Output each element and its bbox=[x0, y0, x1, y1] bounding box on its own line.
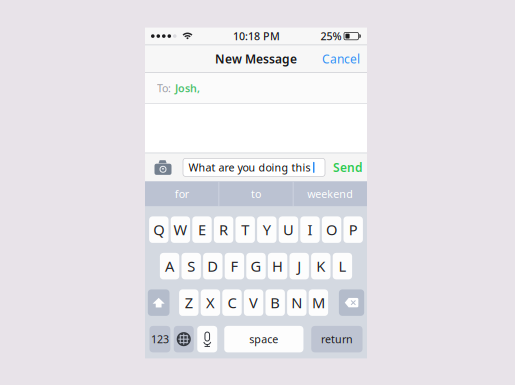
button[interactable]: Delete bbox=[339, 289, 364, 316]
button[interactable]: L bbox=[333, 253, 352, 279]
button[interactable]: Z bbox=[179, 289, 198, 316]
button[interactable]: F bbox=[225, 253, 244, 279]
button[interactable]: Numbers bbox=[149, 326, 170, 352]
button[interactable]: U bbox=[279, 216, 298, 243]
button[interactable]: X bbox=[201, 289, 220, 316]
staticText: V bbox=[249, 293, 258, 312]
button[interactable]: To: bbox=[145, 73, 367, 103]
staticText: K bbox=[316, 256, 325, 276]
button[interactable]: Take photo bbox=[150, 153, 176, 181]
button[interactable]: Dictate bbox=[197, 326, 217, 352]
button[interactable]: Send bbox=[328, 153, 365, 181]
staticText: R bbox=[219, 220, 228, 239]
button[interactable]: C bbox=[222, 289, 242, 316]
button[interactable]: R bbox=[214, 216, 233, 243]
button[interactable]: Q bbox=[149, 216, 168, 243]
staticText: O bbox=[326, 220, 337, 239]
staticText: Z bbox=[185, 293, 193, 312]
button[interactable]: M bbox=[309, 289, 328, 316]
button[interactable]: Switch keyboard bbox=[174, 326, 194, 352]
staticText: What are you doing this bbox=[188, 160, 310, 174]
button[interactable]: Y bbox=[257, 216, 276, 243]
button[interactable]: G bbox=[246, 253, 266, 279]
button[interactable]: K bbox=[311, 253, 330, 279]
button[interactable]: V bbox=[244, 289, 263, 316]
staticText: space bbox=[249, 332, 278, 346]
button[interactable]: P bbox=[343, 216, 363, 243]
button[interactable]: weekend bbox=[294, 181, 367, 206]
button[interactable]: for bbox=[145, 181, 218, 206]
staticText: D bbox=[207, 256, 218, 276]
button[interactable]: I bbox=[300, 216, 320, 243]
button[interactable]: S bbox=[181, 253, 201, 279]
staticText: weekend bbox=[307, 187, 353, 201]
staticText: C bbox=[227, 293, 236, 312]
button[interactable]: B bbox=[265, 289, 285, 316]
staticText: F bbox=[230, 256, 238, 276]
button[interactable]: E bbox=[192, 216, 212, 243]
button[interactable]: A bbox=[160, 253, 179, 279]
button[interactable]: H bbox=[268, 253, 287, 279]
staticText: U bbox=[283, 220, 294, 239]
button[interactable]: return bbox=[311, 326, 362, 352]
staticText: New Message bbox=[215, 51, 297, 67]
staticText: Q bbox=[153, 220, 164, 239]
staticText: 10:18 PM bbox=[233, 29, 280, 43]
staticText: Josh, bbox=[175, 81, 200, 95]
button[interactable]: Cancel bbox=[315, 45, 367, 72]
staticText: return bbox=[321, 332, 353, 346]
staticText: Y bbox=[263, 220, 271, 239]
button[interactable]: Shift bbox=[148, 289, 169, 316]
staticText: G bbox=[250, 256, 261, 276]
staticText: A bbox=[165, 256, 174, 276]
button[interactable]: to bbox=[219, 181, 293, 206]
staticText: P bbox=[349, 220, 358, 239]
staticText: T bbox=[241, 220, 249, 239]
staticText: Cancel bbox=[322, 51, 360, 67]
staticText: to bbox=[251, 187, 261, 201]
button[interactable]: T bbox=[235, 216, 255, 243]
staticText: To: bbox=[157, 81, 171, 95]
staticText: 123 bbox=[151, 332, 169, 346]
staticText: 25% bbox=[320, 29, 341, 43]
button[interactable]: O bbox=[322, 216, 341, 243]
staticText: W bbox=[173, 220, 187, 239]
button[interactable]: J bbox=[289, 253, 309, 279]
button[interactable]: N bbox=[287, 289, 306, 316]
staticText: L bbox=[338, 256, 346, 276]
staticText: Send bbox=[333, 159, 363, 175]
staticText: for bbox=[175, 187, 189, 201]
staticText: H bbox=[272, 256, 283, 276]
staticText: E bbox=[198, 220, 206, 239]
button[interactable]: D bbox=[203, 253, 222, 279]
staticText: J bbox=[297, 256, 301, 276]
button[interactable]: W bbox=[171, 216, 190, 243]
button[interactable]: space bbox=[224, 326, 303, 352]
staticText: B bbox=[270, 293, 280, 312]
staticText: I bbox=[307, 220, 312, 239]
staticText: X bbox=[206, 293, 215, 312]
staticText: N bbox=[291, 293, 302, 312]
staticText: S bbox=[187, 256, 195, 276]
staticText: M bbox=[312, 293, 325, 312]
